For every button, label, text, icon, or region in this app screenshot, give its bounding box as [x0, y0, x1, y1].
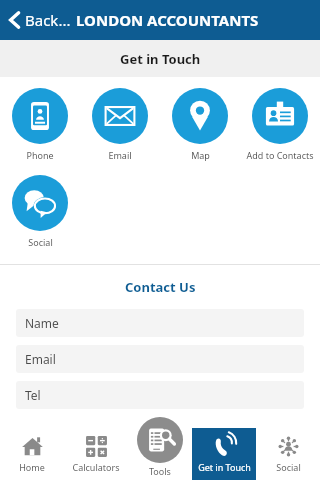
staticText: Tools: [149, 465, 171, 477]
staticText: Tel: [25, 387, 41, 403]
staticText: Home: [19, 461, 45, 473]
staticText: Email: [108, 149, 132, 161]
button[interactable]: Email: [16, 345, 304, 373]
button[interactable]: Social: [256, 428, 320, 480]
button[interactable]: Add to Contacts: [240, 86, 320, 163]
button[interactable]: Tools: [137, 417, 183, 477]
staticText: Name: [25, 315, 59, 331]
other: Back: [8, 11, 21, 29]
button[interactable]: Calculators: [64, 428, 128, 480]
button[interactable]: Map: [160, 86, 240, 163]
staticText: Get in Touch: [120, 50, 201, 68]
button[interactable]: Back: [0, 6, 75, 34]
staticText: LONDON ACCOUNTANTS: [76, 10, 259, 30]
button[interactable]: Name: [16, 309, 304, 337]
staticText: Phone: [26, 149, 54, 161]
button[interactable]: Email: [80, 86, 160, 163]
button[interactable]: Phone: [0, 86, 80, 163]
staticText: Social: [276, 461, 301, 473]
button[interactable]: Home: [0, 428, 64, 480]
staticText: Map: [191, 149, 210, 161]
button[interactable]: Get in Touch: [192, 428, 256, 480]
staticText: Back...: [25, 10, 71, 30]
staticText: Social: [28, 236, 53, 248]
button[interactable]: Tel: [16, 381, 304, 409]
button[interactable]: Social: [0, 173, 80, 250]
staticText: Contact Us: [125, 278, 196, 296]
staticText: Email: [25, 351, 56, 367]
staticText: Get in Touch: [198, 461, 251, 473]
staticText: Calculators: [72, 461, 120, 473]
staticText: Add to Contacts: [246, 149, 314, 161]
